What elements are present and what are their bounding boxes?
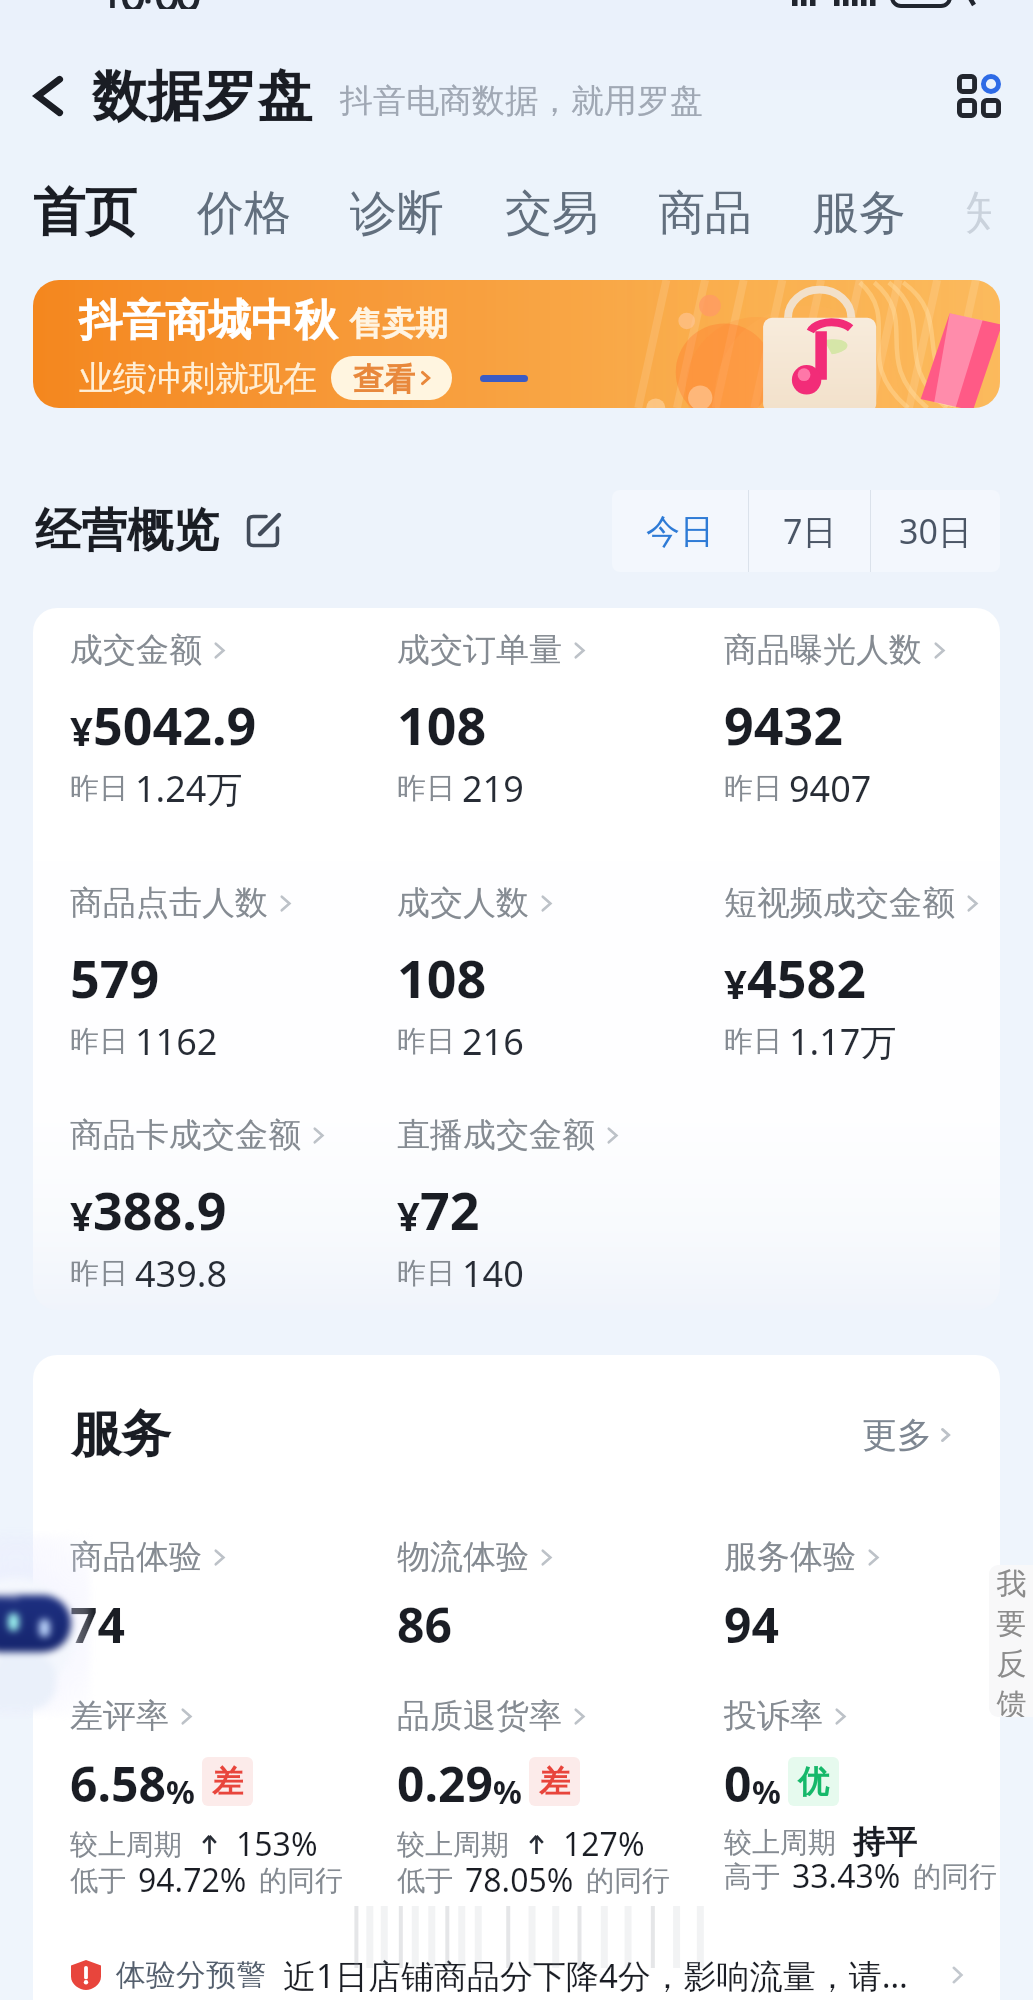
staticText: 1162 [135,1017,218,1066]
button[interactable]: 商品卡成交金额 [70,1114,397,1298]
staticText: ¥ [724,956,747,1010]
button[interactable]: 成交人数 [397,882,724,1066]
staticText: 1.17万 [789,1017,897,1066]
staticText: 78.05% [465,1858,574,1902]
staticText: 今日 [646,510,714,553]
staticText: 439.8 [135,1249,228,1298]
button[interactable]: 抖音商城中秋 [33,280,1000,408]
button[interactable]: 服务体验 [724,1536,1000,1657]
button[interactable]: 查看 [331,356,452,400]
staticText: 108 [397,942,487,1013]
staticText: 低于 [70,1863,126,1898]
staticText: 知 [965,184,992,243]
staticText: 昨日 [70,1023,128,1060]
button[interactable]: Back [20,67,78,125]
staticText: 9407 [789,764,872,813]
button[interactable]: 商品曝光人数 [724,629,1000,813]
staticText: 0 [724,1751,752,1816]
button[interactable]: 直播成交金额 [397,1114,724,1298]
staticText: 昨日 [397,1255,455,1292]
button[interactable]: 价格 [197,184,291,243]
staticText: 低于 [397,1863,453,1898]
staticText: ¥ [397,1188,420,1242]
button[interactable]: AI assistant [0,1535,90,1715]
staticText: 持平 [853,1822,917,1862]
button[interactable]: 成交金额 [70,629,397,813]
staticText: 7日 [783,508,837,554]
staticText: 216 [462,1017,524,1066]
staticText: 数据罗盘 [92,62,312,131]
button[interactable]: 商品体验 [70,1536,397,1657]
staticText: 投诉率 [724,1695,823,1737]
button[interactable]: 知 [965,184,992,243]
staticText: 近1日店铺商品分下降4分，影响流量，请… [283,1953,908,1998]
staticText: 优 [798,1762,829,1801]
button[interactable]: 成交订单量 [397,629,724,813]
button[interactable]: 今日 [612,490,748,572]
staticText: 首页 [33,180,137,246]
button[interactable]: 物流体验 [397,1536,724,1657]
button[interactable]: 30日 [871,490,1000,572]
button[interactable]: 7日 [749,490,870,572]
staticText: 服务 [71,1403,171,1466]
staticText: % [752,1770,781,1814]
staticText: 成交人数 [397,882,529,924]
staticText: 昨日 [70,1255,128,1292]
staticText: 成交金额 [70,629,202,671]
staticText: 差 [212,1762,243,1801]
staticText: 140 [462,1249,524,1298]
button[interactable]: Apps [947,64,1011,128]
staticText: 昨日 [397,1023,455,1060]
button[interactable]: 更多 [862,1413,950,1457]
staticText: 的同行 [586,1863,670,1898]
staticText: 388.9 [93,1174,227,1245]
button[interactable]: 差评率 [70,1695,397,1910]
button[interactable]: 短视频成交金额 [724,882,1000,1066]
staticText: 售卖期 [349,303,448,345]
staticText: 昨日 [724,770,782,807]
staticText: 抖音商城中秋 [79,294,337,348]
button[interactable]: Edit [243,511,283,551]
staticText: 72 [420,1174,480,1245]
button[interactable]: 商品 [658,184,752,243]
button[interactable]: 投诉率 [724,1695,1000,1906]
staticText: 服务体验 [724,1536,856,1578]
staticText: 体验分预警 [116,1956,266,1994]
staticText: 服务 [812,184,906,243]
staticText: 127% [563,1822,645,1866]
staticText: 33.43% [792,1854,901,1898]
staticText: 抖音电商数据，就用罗盘 [340,80,703,122]
staticText: 86 [397,1592,452,1657]
staticText: 品质退货率 [397,1695,562,1737]
staticText: 高于 [724,1859,780,1894]
staticText: 商品点击人数 [70,882,268,924]
staticText: % [493,1770,522,1814]
staticText: 0.29 [397,1751,493,1816]
staticText: 更多 [862,1413,932,1457]
staticText: 商品卡成交金额 [70,1114,301,1156]
staticText: 579 [70,942,160,1013]
button[interactable]: 品质退货率 [397,1695,724,1910]
staticText: 6.58 [70,1751,166,1816]
button[interactable]: 我要反馈 [989,1565,1033,1717]
staticText: 108 [397,689,487,760]
staticText: 差 [539,1762,570,1801]
staticText: 30日 [899,508,972,554]
staticText: 1.24万 [135,764,243,813]
button[interactable]: 商品点击人数 [70,882,397,1066]
staticText: 诊断 [350,184,444,243]
staticText: 昨日 [70,770,128,807]
staticText: 查看 [353,360,415,396]
staticText: 差评率 [70,1695,169,1737]
staticText: 物流体验 [397,1536,529,1578]
staticText: 153% [236,1822,318,1866]
staticText: 我要反馈 [996,1565,1027,1717]
staticText: 商品曝光人数 [724,629,922,671]
button[interactable]: 服务 [812,184,906,243]
staticText: 5042.9 [93,689,257,760]
button[interactable]: 交易 [505,184,599,243]
staticText: 较上周期 [724,1825,836,1860]
button[interactable]: 首页 [33,180,137,246]
button[interactable]: 体验分预警 [71,1947,963,2000]
button[interactable]: 诊断 [350,184,444,243]
